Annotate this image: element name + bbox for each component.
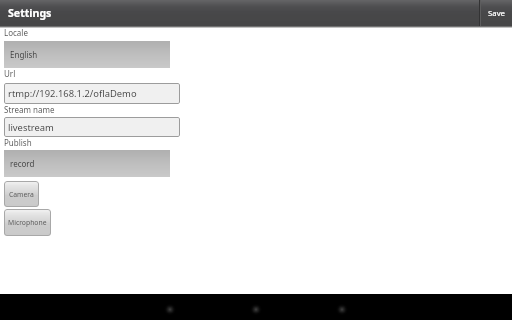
button[interactable]: rtmp://192.168.1.2/oflaDemo (4, 83, 180, 104)
staticText: English (10, 49, 38, 60)
staticText: Microphone (8, 218, 47, 227)
button[interactable]: Recents (321, 294, 363, 320)
staticText: Publish (4, 137, 32, 148)
button[interactable]: Camera (4, 181, 39, 207)
button[interactable]: record (4, 150, 170, 177)
staticText: Locale (4, 27, 28, 38)
button[interactable]: Save (482, 0, 512, 26)
staticText: Camera (9, 190, 34, 199)
staticText: rtmp://192.168.1.2/oflaDemo (8, 87, 137, 100)
button[interactable]: Home (235, 294, 277, 320)
staticText: Save (488, 8, 506, 19)
staticText: Settings (8, 6, 52, 20)
staticText: livestream (8, 121, 54, 134)
button[interactable]: Back (149, 294, 191, 320)
button[interactable]: Microphone (4, 209, 51, 236)
staticText: record (10, 158, 35, 169)
button[interactable]: English (4, 41, 170, 68)
button[interactable]: livestream (4, 117, 180, 137)
staticText: Url (4, 68, 16, 79)
staticText: Stream name (4, 104, 55, 115)
